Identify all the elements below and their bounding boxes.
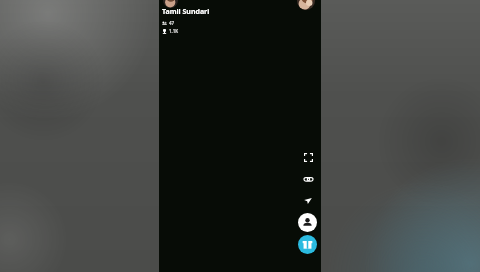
button[interactable]: Send gift bbox=[298, 235, 317, 254]
button[interactable]: Profile bbox=[159, 0, 321, 272]
button[interactable]: Host profile bbox=[297, 0, 315, 10]
button[interactable]: Fullscreen bbox=[299, 148, 317, 166]
button[interactable]: Link bbox=[299, 170, 317, 188]
button[interactable]: Share bbox=[299, 192, 317, 210]
staticText: 47 bbox=[169, 20, 175, 26]
button[interactable]: Add friend bbox=[298, 213, 317, 232]
staticText: 1.1K bbox=[169, 28, 179, 34]
button[interactable]: Profile bbox=[163, 0, 178, 8]
staticText: Tamil Sundari bbox=[162, 7, 210, 17]
